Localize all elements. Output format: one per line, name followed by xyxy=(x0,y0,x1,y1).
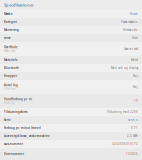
button[interactable]: Serie xyxy=(0,116,142,124)
staticText: Serie xyxy=(4,118,11,122)
staticText: 10 xyxy=(134,99,138,103)
staticText: Varenummer xyxy=(4,152,24,156)
button[interactable]: Vandforbrug pr. år xyxy=(0,94,142,108)
button[interactable]: Materiale xyxy=(0,56,142,64)
staticText: Materiale xyxy=(4,49,16,52)
staticText: Bosch xyxy=(130,12,138,16)
staticText: Nej xyxy=(133,85,138,89)
staticText: Fritstående xyxy=(123,28,138,32)
staticText: Tilslutningsform xyxy=(4,110,28,114)
staticText: Hvid xyxy=(132,36,138,40)
staticText: Forbrug xyxy=(4,101,15,104)
staticText: 0.71 xyxy=(131,126,138,130)
staticText: Vandforbrug pr. år xyxy=(4,97,32,101)
staticText: Overflade xyxy=(4,45,18,49)
staticText: Tilbehør xyxy=(4,87,16,90)
staticText: Montering xyxy=(4,28,19,32)
button[interactable]: Kategori xyxy=(0,18,142,26)
staticText: EAN-nummer xyxy=(4,142,23,146)
staticText: Med wifi og display xyxy=(111,66,138,70)
staticText: Vaskemaskine xyxy=(121,20,138,24)
staticText: Lavenergiklasse, vaskemaskine xyxy=(4,134,50,138)
button[interactable]: Montering xyxy=(0,26,142,34)
staticText: Serie 6 xyxy=(128,118,138,122)
button[interactable]: Bluetooth xyxy=(0,64,142,72)
staticText: Materiale xyxy=(4,58,18,62)
staticText: Nej xyxy=(133,74,138,78)
staticText: 4242005016174 xyxy=(112,142,138,146)
staticText: 123456 xyxy=(126,152,138,156)
staticText: Metal xyxy=(131,58,138,62)
button[interactable]: EAN-nummer xyxy=(0,140,142,148)
button[interactable]: Overflade xyxy=(0,42,142,56)
staticText: Forbrug pr. minut (timer) xyxy=(4,126,41,130)
button[interactable]: Mærke xyxy=(0,10,142,18)
staticText: Lakeret stål xyxy=(124,47,138,51)
staticText: Specifikationer xyxy=(4,2,34,8)
button[interactable]: Farve xyxy=(0,34,142,42)
staticText: Antal låg xyxy=(4,83,18,87)
button[interactable]: Forbrug pr. minut (timer) xyxy=(0,124,142,132)
staticText: 2.4 kWh xyxy=(127,134,138,138)
staticText: Knapper xyxy=(4,74,17,78)
button[interactable]: Lavenergiklasse, vaskemaskine xyxy=(0,132,142,140)
staticText: Farve xyxy=(4,36,11,40)
staticText: Tilslutning med 220V xyxy=(107,110,138,114)
button[interactable]: Antal låg xyxy=(0,80,142,94)
staticText: Mærke xyxy=(4,12,13,16)
staticText: Bluetooth xyxy=(4,66,19,70)
button[interactable]: Knapper xyxy=(0,72,142,80)
button[interactable]: Varenummer xyxy=(0,148,142,160)
button[interactable]: Tilslutningsform xyxy=(0,108,142,116)
staticText: Kategori xyxy=(4,20,17,24)
